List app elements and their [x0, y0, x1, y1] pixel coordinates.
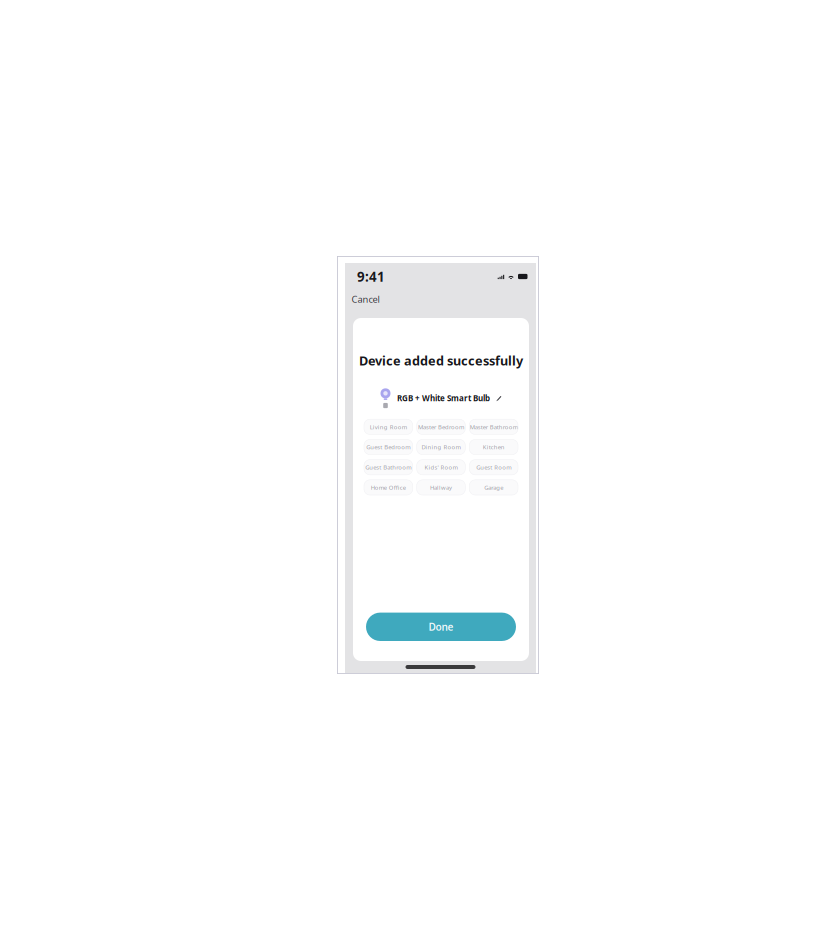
staticText: Dining Room — [421, 443, 460, 451]
button[interactable]: Kids' Room — [417, 460, 465, 475]
staticText: Cancel — [351, 293, 379, 305]
staticText: RGB + White Smart Bulb — [397, 393, 490, 403]
button[interactable]: Done — [366, 613, 516, 641]
staticText: Garage — [484, 483, 503, 491]
staticText: Master Bathroom — [470, 423, 518, 431]
staticText: Done — [428, 620, 453, 634]
staticText: Guest Room — [476, 463, 511, 471]
button[interactable]: Kitchen — [469, 439, 518, 455]
button[interactable]: Guest Bedroom — [364, 439, 413, 455]
button[interactable]: Master Bathroom — [469, 419, 518, 434]
button[interactable]: Guest Room — [469, 460, 518, 475]
staticText: 9:41 — [357, 267, 385, 286]
button[interactable]: Dining Room — [417, 439, 465, 455]
button[interactable]: Cancel — [350, 290, 381, 308]
staticText: Guest Bathroom — [365, 463, 411, 471]
button[interactable]: Hallway — [417, 480, 465, 495]
staticText: Device added successfully — [359, 352, 523, 369]
button[interactable]: Living Room — [364, 419, 413, 434]
staticText: Kitchen — [483, 443, 505, 451]
button[interactable]: Garage — [469, 480, 518, 495]
staticText: Living Room — [370, 423, 407, 431]
staticText: Hallway — [430, 483, 452, 491]
button[interactable]: Home Office — [364, 480, 413, 495]
staticText: Home Office — [371, 483, 406, 491]
staticText: Kids' Room — [424, 463, 457, 471]
staticText: Guest Bedroom — [366, 443, 410, 451]
button[interactable]: Guest Bathroom — [364, 460, 413, 475]
staticText: Master Bedroom — [418, 423, 464, 431]
button[interactable]: Master Bedroom — [417, 419, 465, 434]
